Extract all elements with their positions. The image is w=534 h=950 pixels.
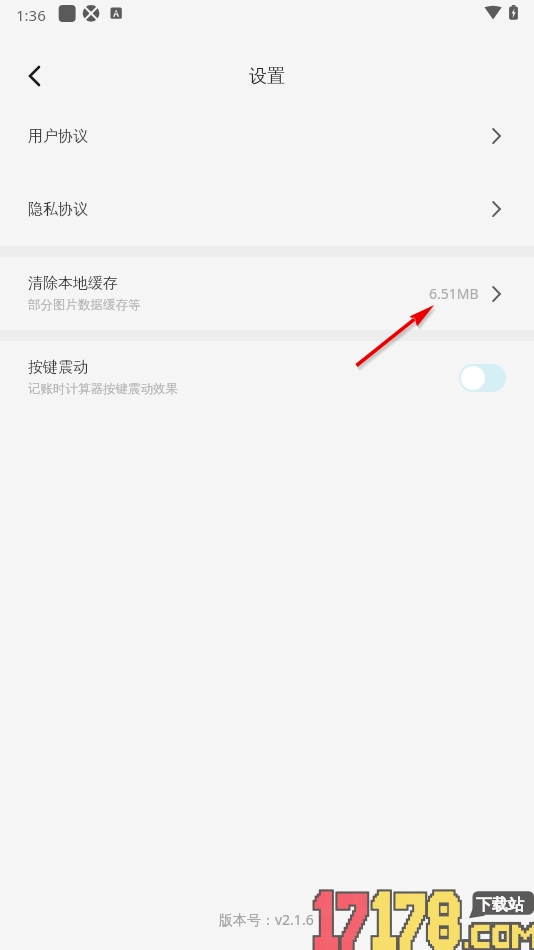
staticText: 下载站 (476, 895, 524, 915)
staticText: 用户协议 (28, 127, 88, 146)
staticText: 6.51MB (429, 284, 479, 303)
button[interactable]: 用户协议 (0, 100, 534, 172)
staticText: 按键震动 (28, 358, 88, 377)
button[interactable]: 清除本地缓存 (0, 257, 534, 330)
staticText: 设置 (249, 65, 285, 88)
staticText: 版本号：v2.1.6 (219, 910, 314, 929)
button[interactable]: 按键震动开关 (459, 364, 506, 392)
button[interactable]: Back (0, 42, 68, 110)
staticText: 清除本地缓存 (28, 274, 118, 293)
staticText: 隐私协议 (28, 200, 88, 219)
staticText: 记账时计算器按键震动效果 (28, 381, 178, 397)
button[interactable]: 隐私协议 (0, 172, 534, 246)
staticText: 部分图片数据缓存等 (28, 297, 141, 313)
staticText: 1:36 (16, 5, 46, 25)
